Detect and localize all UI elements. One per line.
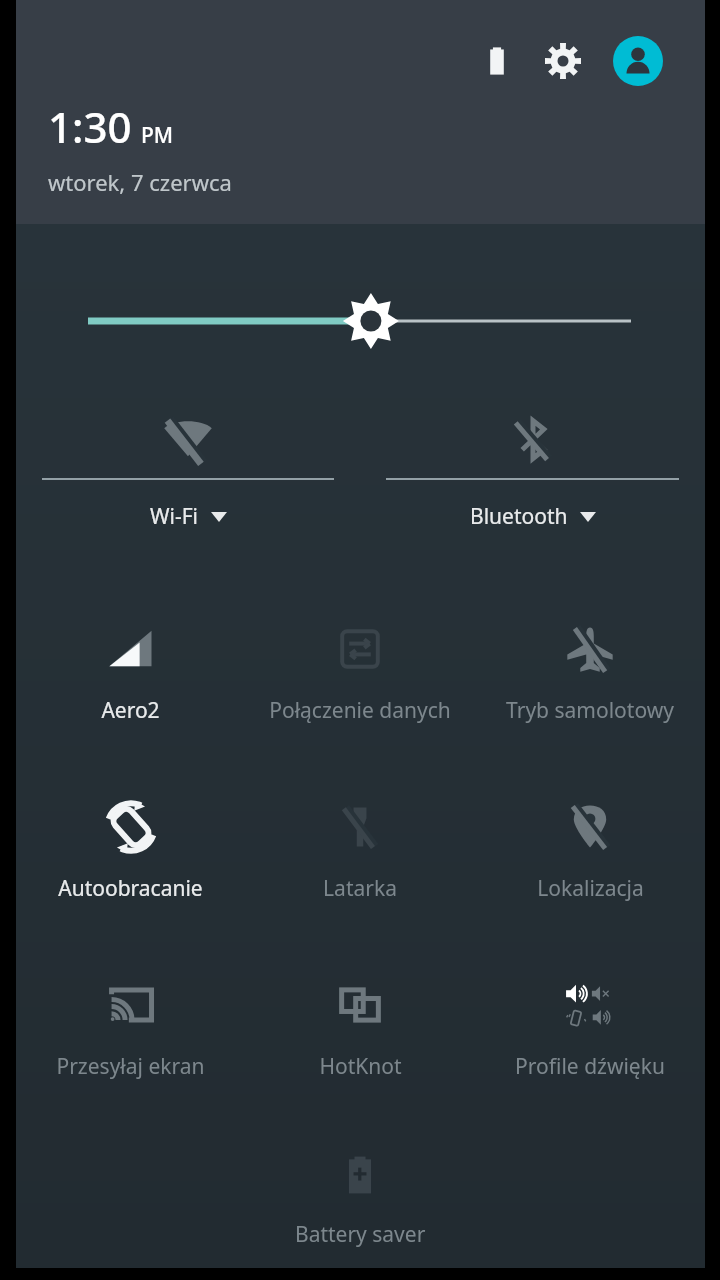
button[interactable]: Połączenie danych: [245, 612, 475, 746]
button[interactable]: Bluetooth: [360, 402, 705, 554]
staticText: Battery saver: [295, 1220, 426, 1249]
button[interactable]: Settings: [539, 37, 587, 85]
staticText: Latarka: [323, 874, 397, 903]
button[interactable]: HotKnot: [245, 968, 475, 1102]
button[interactable]: Latarka: [245, 790, 475, 924]
staticText: Wi-Fi: [150, 502, 199, 531]
button[interactable]: Lokalizacja: [475, 790, 705, 924]
staticText: Bluetooth: [470, 502, 568, 531]
staticText: PM: [141, 121, 174, 150]
staticText: Autoobracanie: [58, 874, 203, 903]
button[interactable]: Tryb samolotowy: [475, 612, 705, 746]
staticText: Połączenie danych: [269, 696, 451, 725]
button[interactable]: Wi-Fi: [16, 402, 360, 554]
button[interactable]: Brightness: [16, 286, 705, 356]
staticText: 1:30: [48, 98, 132, 155]
button[interactable]: Battery: [473, 37, 521, 85]
button[interactable]: Profile dźwięku: [475, 968, 705, 1102]
staticText: Lokalizacja: [537, 874, 644, 903]
staticText: Przesyłaj ekran: [56, 1052, 205, 1081]
staticText: HotKnot: [319, 1052, 402, 1081]
button[interactable]: Battery saver: [245, 1144, 475, 1264]
staticText: wtorek, 7 czerwca: [48, 167, 232, 197]
staticText: Aero2: [101, 696, 160, 725]
staticText: Tryb samolotowy: [506, 696, 674, 725]
button[interactable]: User profile: [613, 36, 663, 86]
staticText: Profile dźwięku: [515, 1052, 665, 1081]
button[interactable]: Aero2: [16, 612, 245, 746]
button[interactable]: Autoobracanie: [16, 790, 245, 924]
button[interactable]: Przesyłaj ekran: [16, 968, 245, 1102]
